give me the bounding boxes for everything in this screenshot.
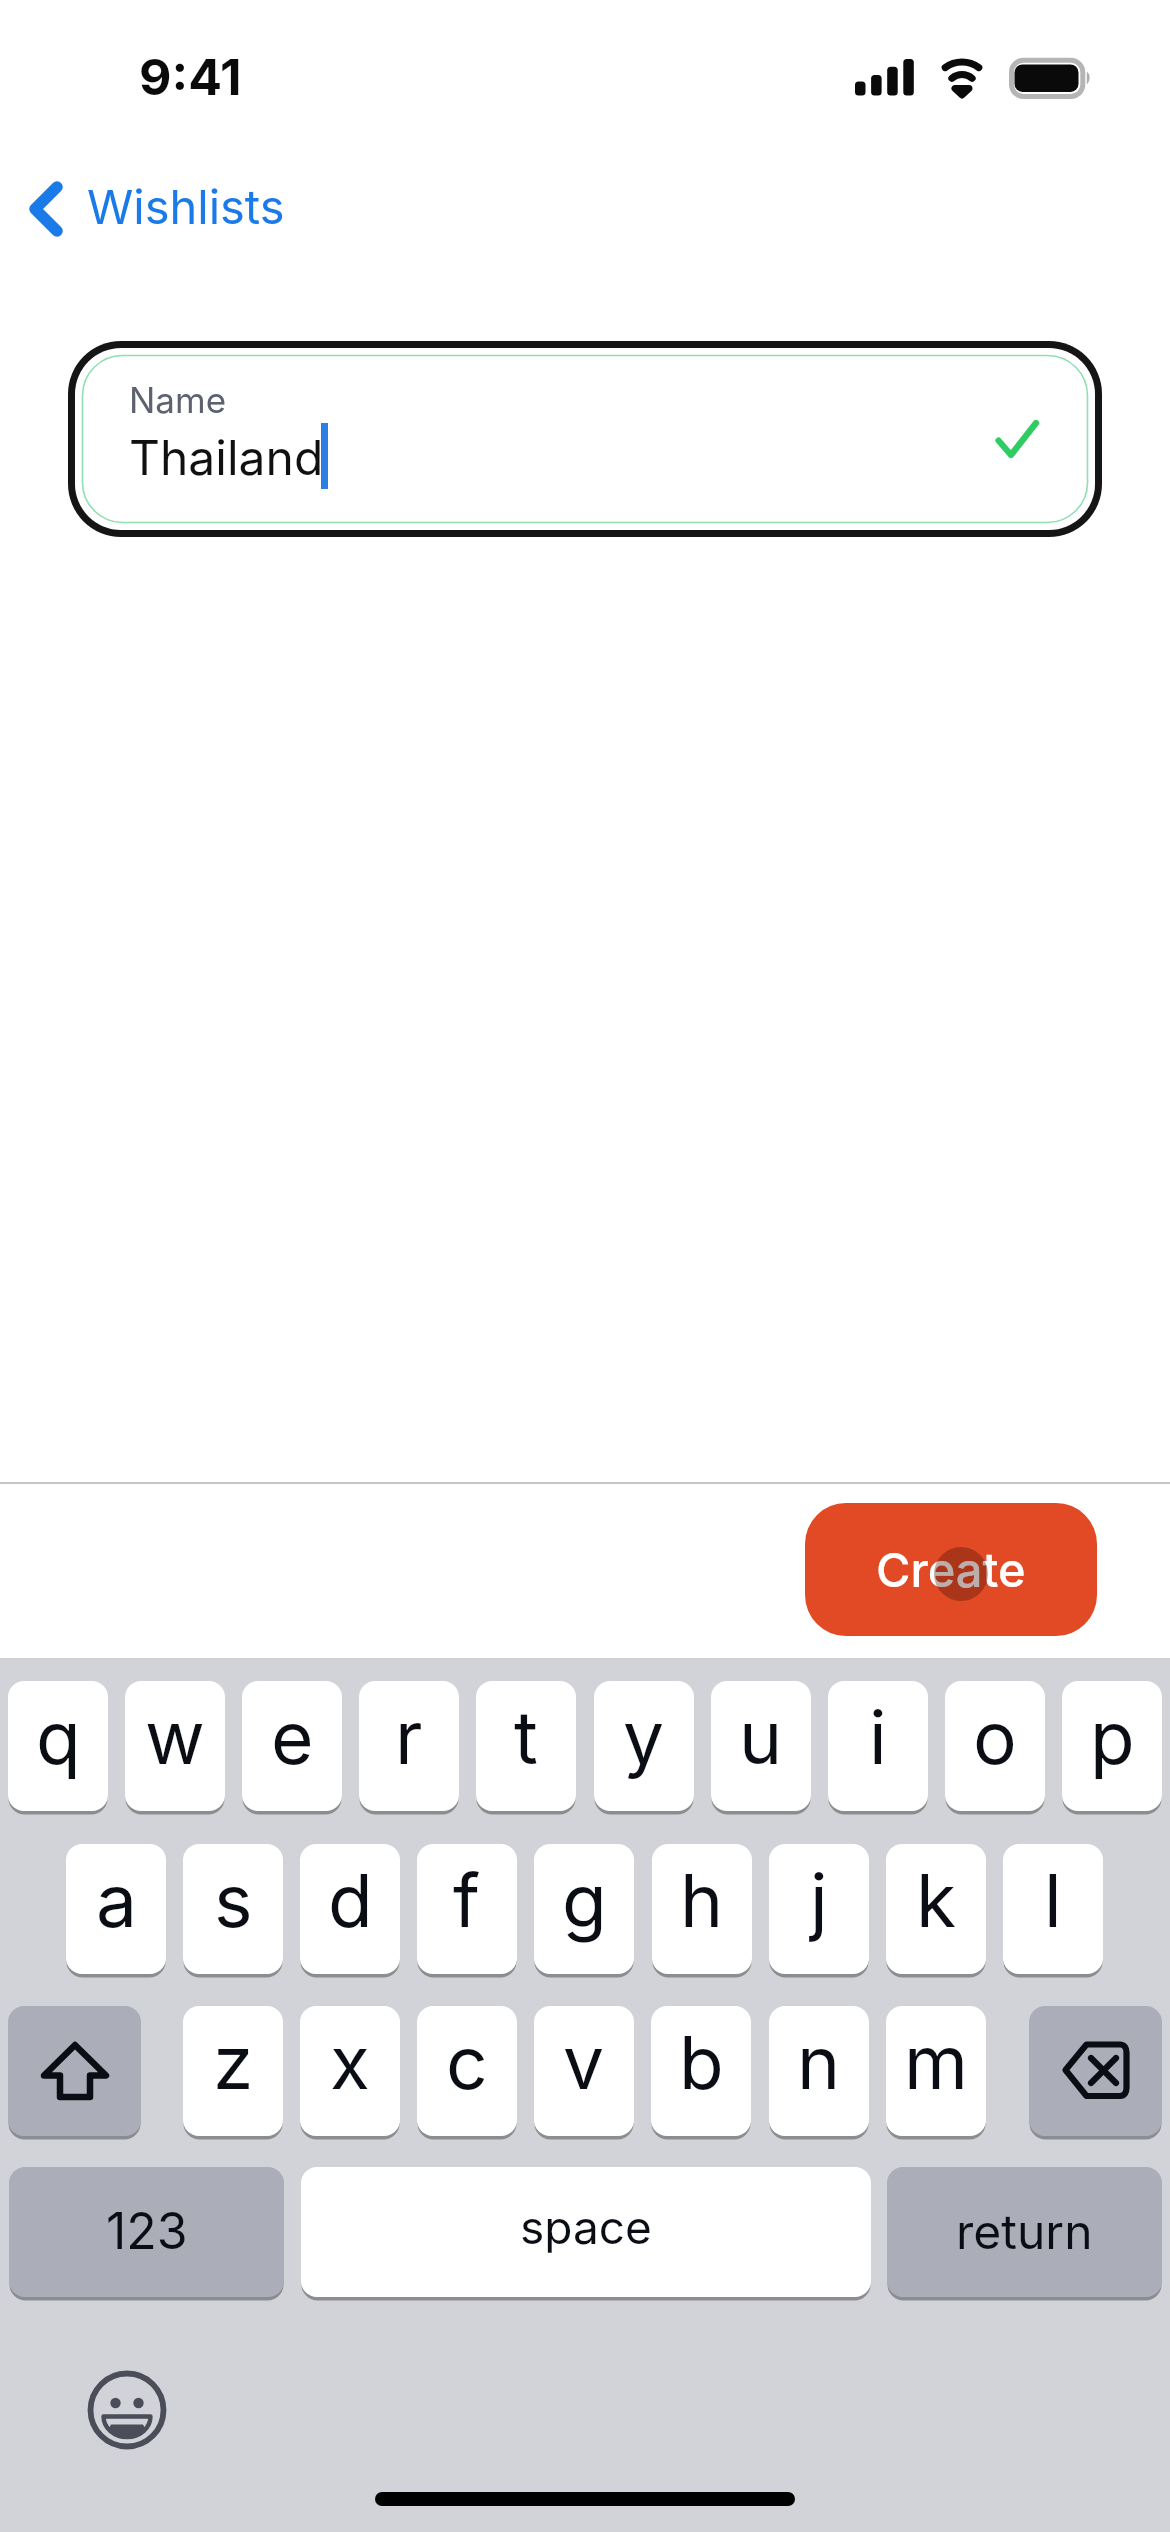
- button[interactable]: a: [66, 1844, 166, 1974]
- button[interactable]: h: [652, 1844, 752, 1974]
- staticText: j: [810, 1856, 828, 1944]
- button[interactable]: 123: [9, 2167, 284, 2297]
- button[interactable]: s: [183, 1844, 283, 1974]
- staticText: n: [797, 2018, 841, 2106]
- staticText: m: [904, 2018, 968, 2106]
- button[interactable]: Backspace: [1029, 2006, 1162, 2136]
- staticText: z: [213, 2018, 254, 2106]
- staticText: Thailand: [129, 428, 324, 486]
- staticText: e: [271, 1693, 314, 1781]
- button[interactable]: k: [886, 1844, 986, 1974]
- staticText: u: [739, 1693, 783, 1781]
- staticText: g: [562, 1856, 607, 1944]
- staticText: v: [563, 2018, 605, 2106]
- staticText: Name: [129, 379, 227, 421]
- button[interactable]: n: [769, 2006, 869, 2136]
- button[interactable]: r: [359, 1681, 459, 1811]
- button[interactable]: m: [886, 2006, 986, 2136]
- button[interactable]: y: [594, 1681, 694, 1811]
- staticText: p: [1090, 1693, 1135, 1781]
- staticText: i: [869, 1693, 887, 1781]
- button[interactable]: e: [242, 1681, 342, 1811]
- button[interactable]: c: [417, 2006, 517, 2136]
- button[interactable]: p: [1062, 1681, 1162, 1811]
- staticText: a: [96, 1856, 137, 1944]
- button[interactable]: Create: [805, 1503, 1097, 1636]
- button[interactable]: g: [534, 1844, 634, 1974]
- staticText: c: [446, 2018, 488, 2106]
- staticText: return: [956, 2202, 1093, 2260]
- button[interactable]: w: [125, 1681, 225, 1811]
- staticText: Create: [876, 1541, 1026, 1598]
- staticText: b: [679, 2018, 724, 2106]
- button[interactable]: return: [887, 2167, 1162, 2297]
- button[interactable]: f: [417, 1844, 517, 1974]
- staticText: h: [680, 1856, 724, 1944]
- button[interactable]: Wishlists: [0, 144, 330, 268]
- staticText: d: [328, 1856, 373, 1944]
- button[interactable]: t: [476, 1681, 576, 1811]
- staticText: Wishlists: [87, 178, 285, 235]
- staticText: space: [520, 2199, 652, 2255]
- staticText: y: [623, 1693, 665, 1781]
- staticText: f: [453, 1856, 481, 1944]
- staticText: l: [1044, 1856, 1062, 1944]
- button[interactable]: Name: [75, 348, 1095, 530]
- staticText: 9:41: [139, 47, 242, 107]
- button[interactable]: Shift: [8, 2006, 141, 2136]
- staticText: w: [145, 1693, 205, 1781]
- button[interactable]: b: [651, 2006, 751, 2136]
- staticText: x: [330, 2018, 370, 2106]
- staticText: r: [395, 1693, 423, 1781]
- button[interactable]: o: [945, 1681, 1045, 1811]
- staticText: q: [36, 1693, 81, 1781]
- button[interactable]: u: [711, 1681, 811, 1811]
- staticText: t: [514, 1693, 538, 1781]
- button[interactable]: d: [300, 1844, 400, 1974]
- button[interactable]: j: [769, 1844, 869, 1974]
- button[interactable]: space: [301, 2167, 871, 2297]
- button[interactable]: i: [828, 1681, 928, 1811]
- button[interactable]: x: [300, 2006, 400, 2136]
- button[interactable]: Emoji keyboard: [88, 2371, 166, 2449]
- staticText: 123: [106, 2201, 188, 2261]
- staticText: k: [916, 1856, 957, 1944]
- button[interactable]: q: [8, 1681, 108, 1811]
- staticText: o: [973, 1693, 1017, 1781]
- staticText: s: [214, 1856, 253, 1944]
- button[interactable]: v: [534, 2006, 634, 2136]
- button[interactable]: l: [1003, 1844, 1103, 1974]
- button[interactable]: z: [183, 2006, 283, 2136]
